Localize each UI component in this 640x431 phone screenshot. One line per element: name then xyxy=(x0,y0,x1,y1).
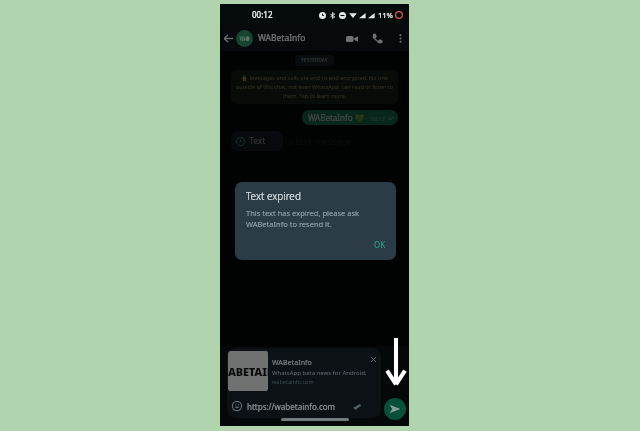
staticText: WABetaInfo xyxy=(272,358,312,368)
button[interactable]: 🔒 Messages and calls are end-to-end encr… xyxy=(236,74,393,100)
button[interactable]: More options xyxy=(393,31,407,45)
button[interactable]: Text xyxy=(236,135,266,147)
staticText: WABetaInfo 💚 xyxy=(308,112,365,123)
staticText: https://wabetainfo.com xyxy=(247,401,336,412)
staticText: 🔒 Messages and calls are end-to-end encr… xyxy=(236,74,393,100)
button[interactable]: Remove preview xyxy=(367,353,379,365)
button[interactable]: YESTERDAY xyxy=(301,57,328,64)
staticText: Text xyxy=(249,135,266,147)
staticText: Text expired xyxy=(246,189,301,203)
staticText: 00:12 xyxy=(371,115,386,122)
staticText: WABetaInfo xyxy=(258,32,306,44)
button[interactable]: Video call xyxy=(343,30,360,47)
button[interactable]: WABetaInfo 💚 xyxy=(308,112,394,123)
staticText: YESTERDAY xyxy=(301,57,328,64)
button[interactable]: https://wabetainfo.com xyxy=(232,394,376,418)
staticText: WhatsApp beta news for Android, iOS. xyxy=(272,369,367,377)
button[interactable]: Voice call xyxy=(369,30,386,47)
staticText: wabetainfo.com xyxy=(272,378,314,385)
staticText: ABETAINFO xyxy=(228,364,268,379)
button[interactable]: Back xyxy=(221,31,235,45)
staticText: 11% xyxy=(378,10,393,20)
staticText: OK xyxy=(374,239,386,250)
staticText: This text has expired, please ask WABeta… xyxy=(246,208,386,229)
button[interactable]: OK xyxy=(369,237,391,252)
staticText: 00:12 xyxy=(252,9,273,20)
button[interactable]: Profile photo xyxy=(236,30,253,47)
button[interactable]: ABETAINFO xyxy=(227,348,381,394)
button[interactable]: Send xyxy=(384,398,406,420)
